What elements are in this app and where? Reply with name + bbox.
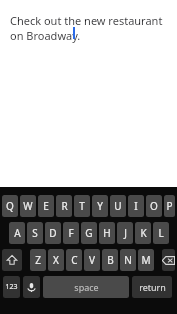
staticText: Check out the new restaurant on Broadway…: [10, 13, 163, 43]
staticText: X: [53, 253, 59, 267]
button[interactable]: A: [9, 222, 25, 244]
button[interactable]: return: [132, 276, 172, 298]
button[interactable]: F: [63, 222, 79, 244]
button[interactable]: T: [74, 195, 90, 217]
button[interactable]: Z: [30, 249, 46, 271]
staticText: I: [134, 199, 138, 213]
staticText: U: [114, 199, 122, 213]
button[interactable]: E: [38, 195, 54, 217]
staticText: F: [68, 226, 74, 240]
button[interactable]: Shift: [2, 249, 22, 271]
button[interactable]: J: [117, 222, 133, 244]
staticText: S: [32, 226, 38, 240]
staticText: J: [124, 226, 127, 240]
staticText: return: [139, 281, 166, 293]
staticText: L: [158, 226, 164, 240]
staticText: W: [23, 199, 33, 213]
button[interactable]: H: [99, 222, 115, 244]
button[interactable]: R: [56, 195, 72, 217]
button[interactable]: N: [120, 249, 136, 271]
staticText: G: [85, 226, 93, 240]
staticText: Z: [35, 253, 41, 267]
button[interactable]: I: [128, 195, 144, 217]
staticText: K: [140, 226, 147, 240]
button[interactable]: S: [27, 222, 43, 244]
button[interactable]: Check out the new restaurant on Broadway…: [0, 0, 177, 187]
button[interactable]: D: [45, 222, 61, 244]
button[interactable]: 123: [3, 276, 20, 298]
button[interactable]: W: [20, 195, 36, 217]
staticText: N: [124, 253, 132, 267]
button[interactable]: space: [43, 276, 129, 298]
staticText: D: [49, 226, 57, 240]
staticText: B: [107, 253, 114, 267]
staticText: A: [14, 226, 21, 240]
staticText: C: [71, 253, 78, 267]
button[interactable]: L: [153, 222, 169, 244]
button[interactable]: Backspace: [162, 249, 175, 271]
staticText: 123: [5, 282, 18, 292]
staticText: V: [89, 253, 95, 267]
staticText: R: [61, 199, 68, 213]
staticText: T: [79, 199, 85, 213]
button[interactable]: X: [48, 249, 64, 271]
button[interactable]: U: [110, 195, 126, 217]
staticText: E: [43, 199, 49, 213]
staticText: H: [103, 226, 111, 240]
staticText: space: [74, 281, 99, 293]
button[interactable]: Dictate: [23, 276, 40, 298]
staticText: O: [150, 199, 158, 213]
button[interactable]: C: [66, 249, 82, 271]
button[interactable]: B: [102, 249, 118, 271]
button[interactable]: M: [138, 249, 154, 271]
staticText: M: [141, 253, 151, 267]
button[interactable]: K: [135, 222, 151, 244]
button[interactable]: Y: [92, 195, 108, 217]
button[interactable]: V: [84, 249, 100, 271]
button[interactable]: Q: [2, 195, 18, 217]
staticText: P: [166, 199, 173, 213]
staticText: Y: [97, 199, 103, 213]
button[interactable]: G: [81, 222, 97, 244]
button[interactable]: P: [164, 195, 175, 217]
staticText: Q: [6, 199, 14, 213]
button[interactable]: O: [146, 195, 162, 217]
